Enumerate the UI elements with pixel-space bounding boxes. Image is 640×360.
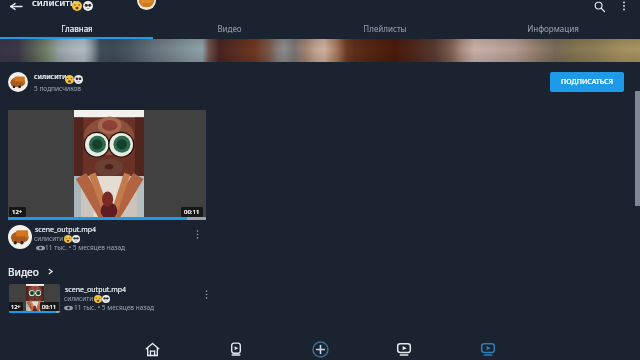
button[interactable]: scene_output.mp4 video <box>9 284 60 313</box>
staticText: scene_output.mp4 <box>65 285 127 295</box>
staticText: 12+ <box>11 303 21 310</box>
staticText: силисити <box>64 294 94 303</box>
staticText: силисити <box>34 234 64 243</box>
button[interactable]: Видео <box>153 18 305 38</box>
staticText: 12+ <box>12 208 23 216</box>
staticText: силисити <box>32 0 76 9</box>
button[interactable]: Library <box>446 338 530 360</box>
button[interactable]: Home <box>110 338 194 360</box>
button[interactable]: Channel avatar <box>8 72 28 92</box>
button[interactable]: Create <box>278 338 362 360</box>
button[interactable]: More options <box>615 0 633 15</box>
staticText: 00:11 <box>42 303 57 310</box>
button[interactable]: ПОДПИСАТЬСЯ <box>550 72 624 92</box>
button[interactable]: Информация <box>465 18 640 38</box>
button[interactable]: Channel avatar <box>137 0 156 10</box>
staticText: Видео <box>8 265 39 279</box>
button[interactable]: Плейлисты <box>305 18 465 38</box>
staticText: ПОДПИСАТЬСЯ <box>561 77 614 87</box>
button[interactable]: Shorts <box>194 338 278 360</box>
button[interactable]: More actions <box>190 227 204 241</box>
button[interactable]: More actions <box>199 287 213 301</box>
button[interactable]: Главная <box>0 18 153 38</box>
button[interactable]: Видео <box>8 264 54 279</box>
staticText: 00:11 <box>184 208 200 216</box>
button[interactable]: Video player <box>8 110 206 220</box>
staticText: 5 подписчиков <box>34 84 81 93</box>
staticText: Видео <box>217 23 242 34</box>
staticText: силисити <box>34 72 67 82</box>
staticText: 11 тыс. • 5 месяцев назад <box>74 303 154 312</box>
staticText: Главная <box>61 23 93 34</box>
button[interactable]: Channel avatar <box>8 225 32 249</box>
staticText: Информация <box>527 23 579 34</box>
staticText: Плейлисты <box>363 23 407 34</box>
button[interactable]: Subscriptions <box>362 338 446 360</box>
staticText: scene_output.mp4 <box>35 225 97 235</box>
button[interactable]: Back <box>7 0 24 15</box>
staticText: 11 тыс. • 5 месяцев назад <box>45 243 125 252</box>
button[interactable]: Search <box>590 0 608 15</box>
